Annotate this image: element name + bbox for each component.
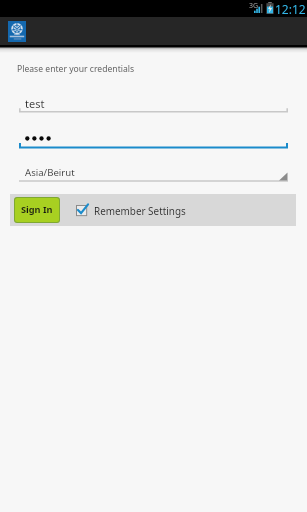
staticText: Asia/Beirut bbox=[25, 166, 75, 179]
staticText: Sign In bbox=[21, 203, 53, 216]
button[interactable]: Sign In bbox=[15, 198, 59, 222]
button[interactable]: test bbox=[19, 94, 288, 113]
button[interactable]: App logo bbox=[8, 21, 26, 42]
staticText: 12:12 bbox=[275, 1, 306, 17]
staticText: Remember Settings bbox=[94, 204, 186, 217]
staticText: Please enter your credentials bbox=[17, 63, 135, 75]
staticText: 3G bbox=[249, 1, 259, 11]
staticText: test bbox=[25, 96, 45, 111]
button[interactable] bbox=[19, 130, 288, 149]
button[interactable]: Asia/Beirut bbox=[19, 165, 288, 182]
button[interactable]: Remember Settings bbox=[76, 194, 186, 226]
